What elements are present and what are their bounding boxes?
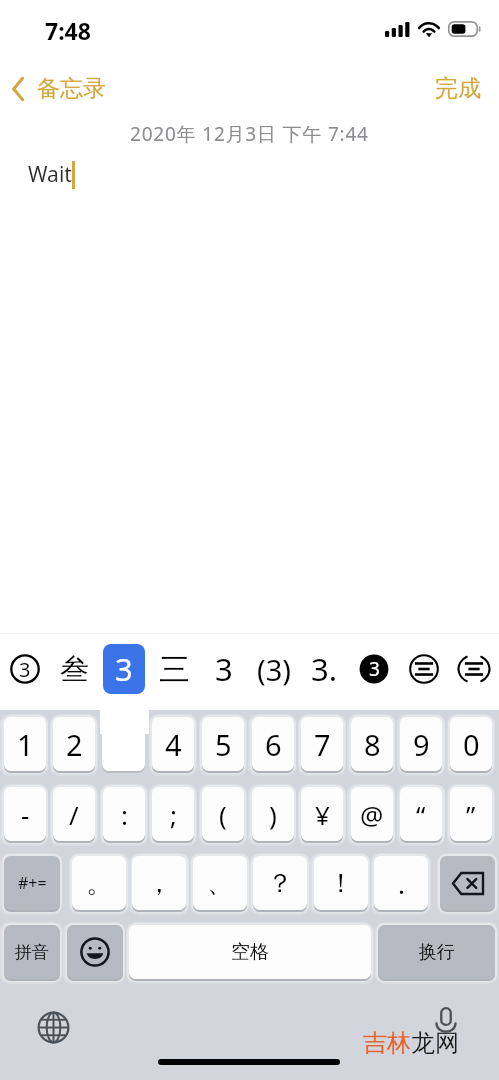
staticText: 1 [17, 725, 34, 764]
button[interactable]: #+= [4, 856, 60, 910]
staticText: 4 [165, 725, 182, 764]
button[interactable]: 三 [149, 631, 199, 707]
button[interactable]: 0 [450, 717, 492, 771]
button[interactable]: ) [252, 787, 294, 841]
button[interactable]: 7 [301, 717, 343, 771]
button[interactable]: (3) [249, 631, 299, 707]
staticText: / [69, 797, 79, 832]
button[interactable]: 叁 [49, 631, 99, 707]
staticText: ; [170, 797, 177, 832]
button[interactable]: 9 [400, 717, 442, 771]
button[interactable]: - [4, 787, 46, 841]
staticText: 5 [215, 725, 232, 764]
button[interactable]: ？ [253, 856, 307, 910]
staticText: 2020年 12月3日 下午 7:44 [130, 121, 369, 147]
staticText: 空格 [231, 940, 269, 964]
staticText: 3 [369, 656, 380, 682]
button[interactable]: 8 [351, 717, 393, 771]
staticText: ( [219, 797, 227, 832]
staticText: 完成 [435, 74, 481, 103]
staticText: 6 [265, 725, 282, 764]
button[interactable] [449, 631, 499, 707]
staticText: 、 [207, 867, 233, 900]
staticText: ！ [328, 867, 354, 900]
staticText: 0 [463, 725, 480, 764]
button[interactable]: Emoji [67, 925, 123, 979]
button[interactable]: 完成 [417, 68, 499, 109]
staticText: ？ [267, 867, 293, 900]
button[interactable]: 3 [0, 631, 49, 707]
button[interactable]: “ [400, 787, 442, 841]
button[interactable]: 2 [53, 717, 95, 771]
staticText: : [121, 797, 128, 832]
button[interactable]: 空格 [129, 925, 371, 979]
button[interactable]: ！ [314, 856, 368, 910]
button[interactable]: 3. [299, 631, 349, 707]
button[interactable]: 5 [202, 717, 244, 771]
staticText: 3. [311, 648, 338, 690]
staticText: ¥ [315, 797, 330, 832]
staticText: 8 [364, 725, 381, 764]
staticText: 三 [159, 650, 190, 689]
staticText: 3 [19, 656, 31, 683]
button[interactable]: 3 [99, 631, 149, 707]
staticText: 2 [66, 725, 83, 764]
button[interactable]: 3 [349, 631, 399, 707]
button[interactable]: 。 [72, 856, 126, 910]
staticText: “ [416, 797, 426, 832]
staticText: 备忘录 [37, 74, 106, 103]
button[interactable]: 1 [4, 717, 46, 771]
button[interactable]: ( [202, 787, 244, 841]
staticText: ) [269, 797, 277, 832]
button[interactable]: Dictation [429, 1004, 463, 1038]
button[interactable]: : [103, 787, 145, 841]
staticText: - [21, 797, 30, 832]
button[interactable]: 3 [102, 696, 145, 771]
button[interactable] [399, 631, 449, 707]
staticText: 换行 [419, 941, 455, 964]
button[interactable]: 备忘录 [0, 68, 116, 109]
staticText: 9 [413, 725, 430, 764]
button[interactable]: 、 [193, 856, 247, 910]
button[interactable]: ¥ [301, 787, 343, 841]
button[interactable]: / [53, 787, 95, 841]
button[interactable]: Change keyboard [36, 1010, 70, 1044]
button[interactable]: 换行 [378, 925, 495, 979]
button[interactable]: Backspace [440, 856, 495, 910]
staticText: . [398, 866, 405, 901]
button[interactable]: 4 [152, 717, 194, 771]
staticText: 7:48 [45, 15, 91, 46]
button[interactable]: 6 [252, 717, 294, 771]
staticText: 3 [215, 648, 233, 690]
button[interactable]: 拼音 [4, 925, 60, 979]
staticText: 7 [314, 725, 331, 764]
button[interactable]: ” [450, 787, 492, 841]
staticText: 拼音 [15, 942, 49, 963]
staticText: @ [360, 797, 384, 832]
staticText: 叁 [60, 651, 89, 688]
button[interactable]: ， [132, 856, 186, 910]
staticText: Wait [28, 160, 72, 189]
staticText: 。 [86, 867, 112, 900]
button[interactable]: @ [351, 787, 393, 841]
button[interactable]: ; [152, 787, 194, 841]
button[interactable]: 3 [199, 631, 249, 707]
staticText: (3) [257, 650, 291, 689]
staticText: 龙网 [411, 1028, 459, 1058]
staticText: ， [146, 867, 172, 900]
staticText: #+= [18, 872, 47, 894]
staticText: 吉林 [363, 1028, 411, 1058]
button[interactable]: . [374, 856, 428, 910]
staticText: ” [466, 797, 476, 832]
staticText: 3 [115, 648, 133, 690]
